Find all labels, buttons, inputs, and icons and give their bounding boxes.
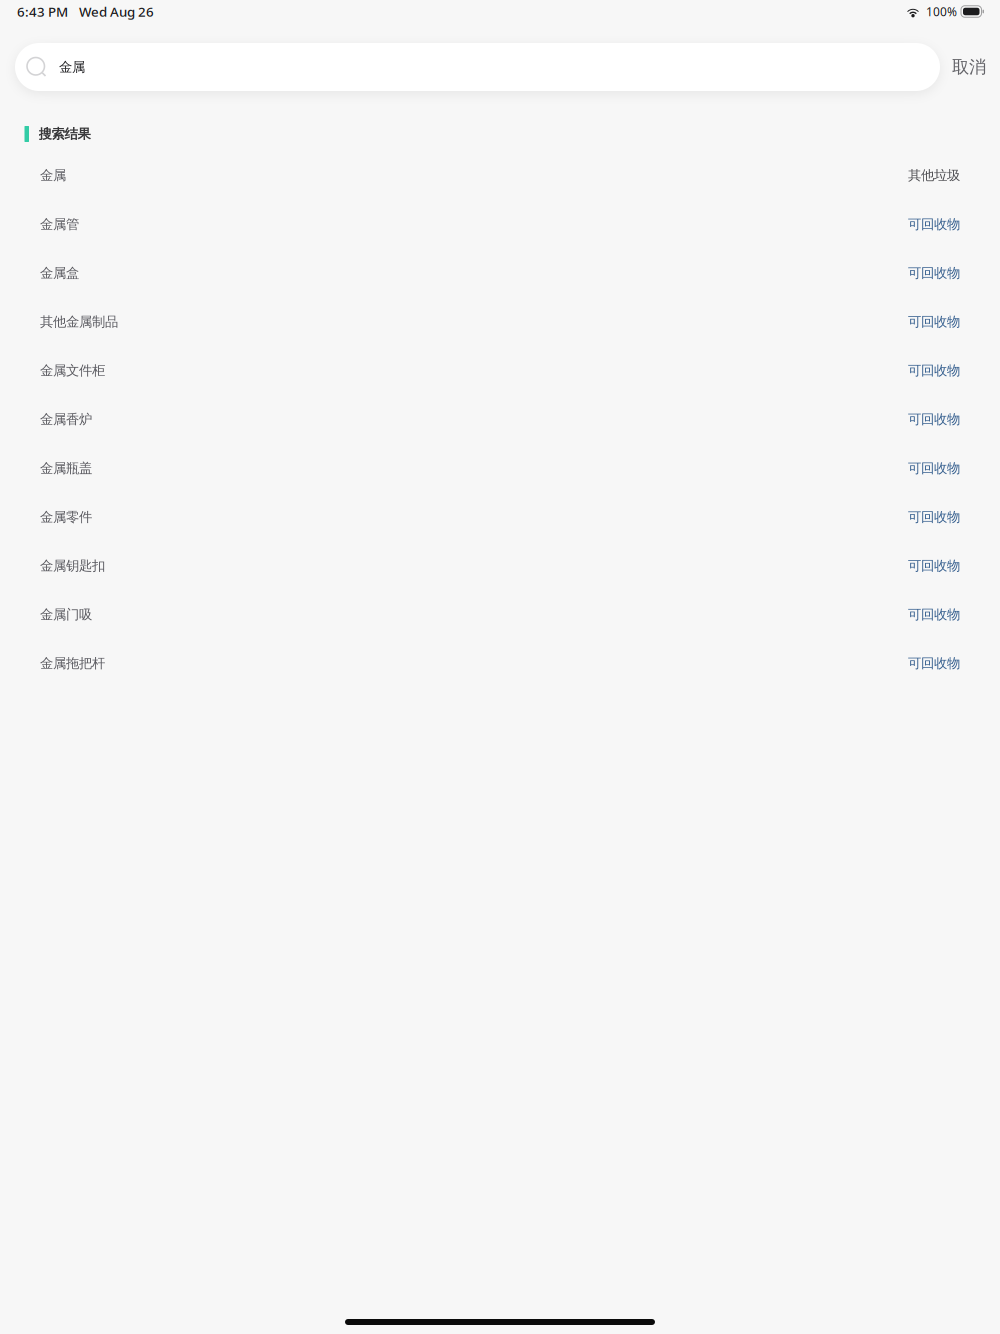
staticText: 6:43 PM [17, 3, 68, 20]
button[interactable]: 金属盒 [0, 249, 1000, 297]
staticText: 可回收物 [908, 655, 960, 672]
staticText: 可回收物 [908, 265, 960, 281]
staticText: Wed Aug 26 [79, 3, 154, 20]
button[interactable]: 金属门吸 [0, 590, 1000, 639]
button[interactable]: 搜索 [15, 43, 940, 91]
staticText: 其他垃圾 [908, 167, 960, 184]
staticText: 金属 [59, 59, 85, 75]
staticText: 可回收物 [908, 558, 960, 574]
button[interactable]: 金属瓶盖 [0, 444, 1000, 493]
button[interactable]: 金属管 [0, 200, 1000, 249]
staticText: 可回收物 [908, 314, 960, 330]
staticText: 金属钥匙扣 [40, 558, 105, 574]
staticText: 取消 [952, 56, 986, 78]
button[interactable]: 其他金属制品 [0, 297, 1000, 346]
staticText: 搜索结果 [38, 126, 90, 142]
button[interactable]: 取消 [940, 43, 1000, 91]
staticText: 金属零件 [40, 509, 92, 525]
staticText: 金属盒 [40, 265, 79, 281]
staticText: 可回收物 [908, 606, 960, 623]
staticText: 金属文件柜 [40, 362, 105, 379]
staticText: 可回收物 [908, 216, 960, 232]
button[interactable]: 金属零件 [0, 493, 1000, 541]
staticText: 金属拖把杆 [40, 655, 105, 672]
staticText: 可回收物 [908, 362, 960, 379]
staticText: 金属门吸 [40, 606, 92, 623]
button[interactable]: 金属香炉 [0, 395, 1000, 444]
staticText: 可回收物 [908, 411, 960, 428]
staticText: 可回收物 [908, 509, 960, 525]
staticText: 金属管 [40, 216, 79, 232]
button[interactable]: 金属文件柜 [0, 346, 1000, 395]
staticText: 金属香炉 [40, 411, 92, 428]
staticText: 金属 [40, 167, 66, 184]
staticText: 100% [926, 3, 957, 19]
staticText: 金属瓶盖 [40, 460, 92, 476]
staticText: 可回收物 [908, 460, 960, 476]
button[interactable]: 金属钥匙扣 [0, 541, 1000, 590]
button[interactable]: 金属 [0, 151, 1000, 200]
staticText: 其他金属制品 [40, 314, 118, 330]
button[interactable]: 金属拖把杆 [0, 639, 1000, 688]
